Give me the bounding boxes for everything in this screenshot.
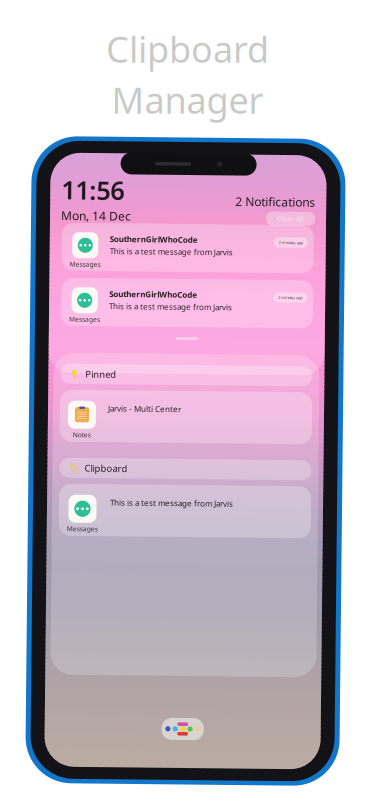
staticText: This is a test message from Jarvis [107, 301, 230, 312]
staticText: This is a test message from Jarvis [110, 498, 233, 508]
staticText: 2 minutes ago [276, 294, 300, 299]
staticText: Pinned [84, 369, 115, 381]
staticText: 11:56 [58, 174, 121, 208]
staticText: Clipboard [106, 25, 269, 73]
staticText: Clear All [274, 213, 301, 222]
staticText: 2 Notifications [232, 193, 312, 209]
staticText: SouthernGirlWhoCode [107, 234, 195, 245]
staticText: Messages [67, 525, 98, 534]
staticText: Messages [67, 261, 98, 270]
staticText: This is a test message from Jarvis [107, 246, 230, 257]
staticText: Mon, 14 Dec [58, 209, 128, 224]
staticText: Clipboard [84, 463, 127, 475]
staticText: Notes [72, 431, 90, 440]
button[interactable]: Messages [59, 279, 311, 327]
button[interactable]: Clear All [263, 211, 312, 225]
staticText: Jarvis - Multi Center [107, 404, 180, 414]
staticText: SouthernGirlWhoCode [107, 289, 195, 300]
button[interactable]: Messages [59, 224, 311, 272]
staticText: Messages [67, 316, 98, 325]
button[interactable]: App library [164, 718, 206, 740]
staticText: Manager [111, 76, 263, 124]
button[interactable]: Messages [59, 485, 311, 537]
button[interactable]: Notes [59, 391, 311, 443]
staticText: 2 minutes ago [276, 239, 300, 244]
